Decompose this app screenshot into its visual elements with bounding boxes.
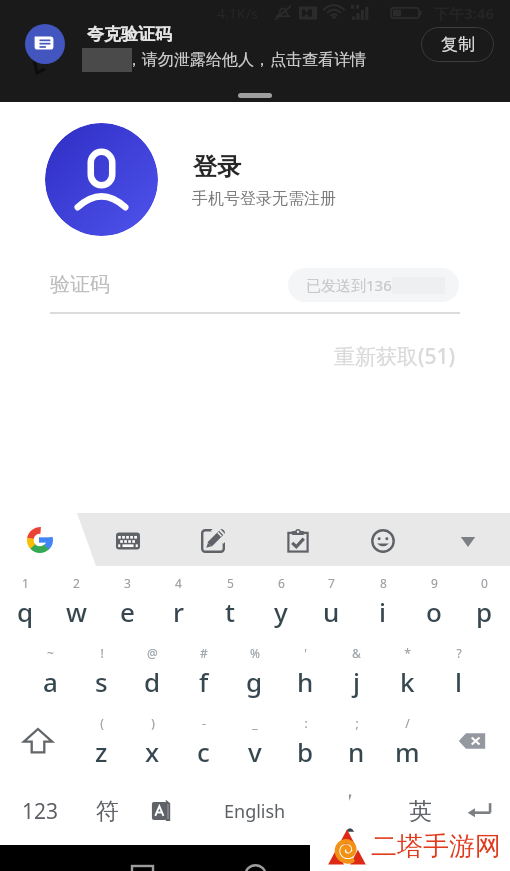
button[interactable]: Backspace	[433, 706, 510, 776]
button[interactable]: ;	[331, 706, 382, 776]
button[interactable]: Keyboard layout	[116, 529, 140, 553]
staticText: 英	[409, 797, 432, 826]
button[interactable]: :	[280, 706, 331, 776]
button[interactable]: 8	[357, 566, 408, 636]
button[interactable]: !	[76, 636, 127, 706]
button[interactable]: 已发送到136	[288, 268, 459, 302]
button[interactable]: #	[178, 636, 229, 706]
button[interactable]: Recents	[131, 865, 154, 871]
staticText: 下午3:46	[434, 3, 494, 23]
staticText: w	[66, 594, 87, 629]
staticText: t	[225, 594, 235, 629]
staticText: e	[120, 594, 135, 629]
button[interactable]: (	[76, 706, 127, 776]
staticText: 6	[278, 575, 285, 591]
staticText: v	[248, 734, 262, 769]
button[interactable]: ~	[25, 636, 76, 706]
button[interactable]: 1	[0, 566, 51, 636]
staticText: a	[43, 664, 58, 699]
staticText: (	[100, 715, 104, 731]
button[interactable]: '	[280, 636, 331, 706]
staticText: s	[95, 664, 108, 699]
staticText: @	[147, 645, 158, 661]
staticText: r	[173, 594, 184, 629]
button[interactable]: 2	[51, 566, 102, 636]
staticText: 复制	[441, 34, 475, 55]
staticText: f	[199, 664, 209, 699]
staticText: 4.1K/s	[217, 4, 258, 23]
staticText: !	[100, 645, 104, 661]
staticText: x	[145, 734, 160, 769]
staticText: *	[404, 645, 411, 661]
staticText: %	[250, 645, 260, 661]
button[interactable]: 复制	[421, 27, 494, 62]
staticText: 9	[431, 575, 438, 591]
button[interactable]: Google	[27, 527, 53, 553]
staticText: /	[405, 715, 410, 731]
staticText: 夸克验证码	[87, 24, 172, 45]
staticText: #	[200, 645, 208, 661]
button[interactable]: Home	[244, 864, 267, 871]
button[interactable]: English	[190, 776, 320, 846]
button[interactable]: Shift	[0, 706, 76, 776]
staticText: c	[197, 734, 210, 769]
staticText: k	[400, 664, 415, 699]
button[interactable]: ?	[433, 636, 484, 706]
staticText: 手机号登录无需注册	[192, 189, 336, 209]
staticText: h	[297, 664, 314, 699]
button[interactable]: 4	[153, 566, 204, 636]
staticText: 2	[73, 575, 80, 591]
staticText: '	[304, 645, 307, 661]
staticText: 7	[328, 575, 335, 591]
staticText: d	[144, 664, 161, 699]
button[interactable]: &	[331, 636, 382, 706]
staticText: o	[426, 594, 442, 629]
button[interactable]: More options	[458, 531, 478, 551]
button[interactable]: @	[127, 636, 178, 706]
button[interactable]: )	[127, 706, 178, 776]
staticText: :	[304, 715, 308, 731]
button[interactable]: 重新获取(51)	[334, 342, 456, 371]
staticText: 二塔手游网	[371, 830, 501, 863]
button[interactable]: -	[178, 706, 229, 776]
button[interactable]: Clipboard	[286, 529, 310, 553]
button[interactable]: Punctuation	[320, 776, 380, 846]
button[interactable]: /	[382, 706, 433, 776]
staticText: g	[246, 664, 263, 699]
staticText: 4	[175, 575, 182, 591]
button[interactable]: 0	[459, 566, 510, 636]
staticText: 符	[96, 797, 119, 826]
button[interactable]: Emoji	[371, 529, 395, 553]
button[interactable]: 3	[102, 566, 153, 636]
button[interactable]: Language	[134, 776, 190, 846]
staticText: y	[274, 594, 288, 629]
staticText: b	[297, 734, 314, 769]
button[interactable]: 7	[306, 566, 357, 636]
staticText: ;	[355, 715, 359, 731]
staticText: ，请勿泄露给他人，点击查看详情	[126, 50, 366, 70]
staticText: 已发送到136	[306, 275, 392, 295]
staticText: English	[224, 799, 286, 824]
staticText: p	[476, 594, 493, 629]
staticText: q	[17, 594, 34, 629]
button[interactable]: 6	[255, 566, 306, 636]
button[interactable]: 5	[204, 566, 255, 636]
staticText: 验证码	[50, 272, 110, 297]
staticText: 8	[380, 575, 387, 591]
staticText: z	[95, 734, 108, 769]
button[interactable]: Handwriting	[201, 529, 225, 553]
staticText: 123	[22, 797, 59, 826]
staticText: )	[151, 715, 155, 731]
button[interactable]: %	[229, 636, 280, 706]
button[interactable]: 符	[80, 776, 134, 846]
button[interactable]: Enter	[450, 776, 510, 846]
button[interactable]: *	[382, 636, 433, 706]
staticText: 5	[227, 575, 234, 591]
staticText: 0	[481, 575, 488, 591]
button[interactable]: _	[229, 706, 280, 776]
staticText: _	[252, 715, 258, 731]
staticText: -	[202, 715, 206, 731]
button[interactable]: 123	[0, 776, 80, 846]
button[interactable]: 英	[390, 776, 450, 846]
button[interactable]: 9	[408, 566, 459, 636]
